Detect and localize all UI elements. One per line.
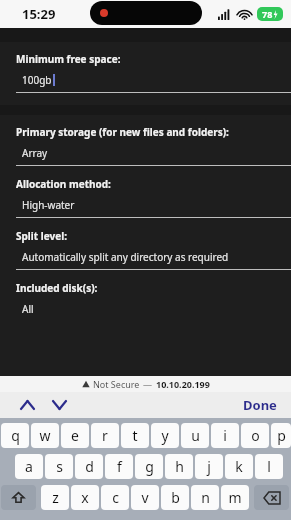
staticText: v <box>141 488 149 507</box>
staticText: 100gb <box>22 73 52 87</box>
button[interactable]: i <box>211 423 239 448</box>
button[interactable]: h <box>165 454 193 479</box>
staticText: 78 <box>262 8 273 20</box>
staticText: e <box>71 426 79 445</box>
button[interactable]: e <box>61 423 89 448</box>
button[interactable]: y <box>151 423 179 448</box>
staticText: l <box>267 457 271 476</box>
button[interactable]: a <box>15 454 43 479</box>
staticText: Array <box>22 146 48 160</box>
button[interactable]: q <box>1 423 29 448</box>
button[interactable]: n <box>191 485 219 510</box>
button[interactable]: x <box>71 485 99 510</box>
staticText: Not Secure <box>93 378 140 390</box>
staticText: m <box>228 488 242 507</box>
button[interactable]: Minimum free space: <box>0 52 291 93</box>
staticText: High-water <box>22 198 75 212</box>
button[interactable]: Split level: <box>0 229 291 270</box>
button[interactable]: p <box>271 423 291 448</box>
staticText: o <box>251 426 260 445</box>
button[interactable]: o <box>241 423 269 448</box>
staticText: n <box>201 488 210 507</box>
button[interactable]: Previous field <box>14 392 40 418</box>
staticText: r <box>102 426 108 445</box>
button[interactable]: f <box>105 454 133 479</box>
button[interactable]: c <box>101 485 129 510</box>
staticText: Done <box>243 396 277 414</box>
button[interactable]: Primary storage (for new files and folde… <box>0 125 291 166</box>
button[interactable]: Done <box>239 393 281 417</box>
staticText: 15:29 <box>22 5 56 23</box>
staticText: q <box>11 426 20 445</box>
button[interactable]: g <box>135 454 163 479</box>
button[interactable]: w <box>31 423 59 448</box>
staticText: z <box>52 488 59 507</box>
button[interactable]: j <box>195 454 223 479</box>
staticText: w <box>39 426 51 445</box>
staticText: y <box>161 426 169 445</box>
button[interactable]: z <box>41 485 69 510</box>
staticText: Automatically split any directory as req… <box>22 250 229 264</box>
staticText: t <box>132 426 138 445</box>
staticText: u <box>191 426 200 445</box>
button[interactable]: k <box>225 454 253 479</box>
staticText: x <box>81 488 89 507</box>
button[interactable]: Included disk(s): <box>0 281 291 321</box>
staticText: d <box>85 457 94 476</box>
staticText: h <box>175 457 184 476</box>
button[interactable]: v <box>131 485 159 510</box>
staticText: i <box>223 426 227 445</box>
staticText: p <box>277 426 286 445</box>
staticText: Allocation method: <box>16 177 111 191</box>
button[interactable]: l <box>255 454 283 479</box>
button[interactable]: Shift <box>1 485 36 510</box>
staticText: g <box>145 457 154 476</box>
button[interactable]: d <box>75 454 103 479</box>
button[interactable]: u <box>181 423 209 448</box>
staticText: All <box>22 302 34 316</box>
staticText: — <box>143 378 153 390</box>
button[interactable]: Backspace <box>254 485 289 510</box>
staticText: k <box>235 457 243 476</box>
button[interactable]: m <box>221 485 249 510</box>
staticText: Included disk(s): <box>16 281 98 295</box>
button[interactable]: b <box>161 485 189 510</box>
staticText: s <box>56 457 63 476</box>
staticText: b <box>171 488 180 507</box>
button[interactable]: t <box>121 423 149 448</box>
staticText: f <box>117 457 122 476</box>
staticText: Split level: <box>16 229 67 243</box>
staticText: j <box>207 457 211 476</box>
staticText: Primary storage (for new files and folde… <box>16 125 229 139</box>
staticText: 10.10.20.199 <box>156 378 210 390</box>
button[interactable]: Allocation method: <box>0 177 291 218</box>
staticText: a <box>25 457 33 476</box>
button[interactable]: Not Secure <box>0 376 291 392</box>
staticText: Minimum free space: <box>16 52 121 66</box>
button[interactable]: r <box>91 423 119 448</box>
button[interactable]: Next field <box>46 392 72 418</box>
staticText: c <box>112 488 119 507</box>
button[interactable]: s <box>45 454 73 479</box>
